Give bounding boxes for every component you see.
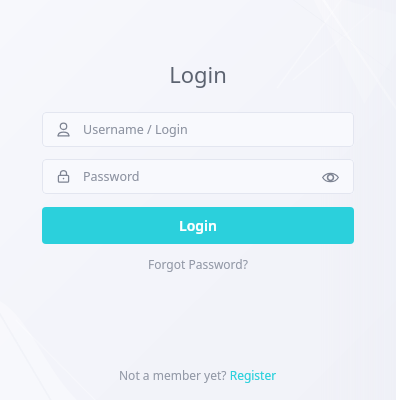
- other: Password: [56, 169, 71, 184]
- button[interactable]: Forgot Password?: [140, 253, 256, 275]
- staticText: Not a member yet? Register: [119, 367, 277, 383]
- other: Username: [56, 122, 71, 137]
- button[interactable]: Show password: [320, 167, 340, 187]
- button[interactable]: Login: [42, 207, 354, 244]
- button[interactable]: Not a member yet? Register: [111, 364, 285, 386]
- staticText: Login: [169, 59, 227, 89]
- staticText: Password: [83, 168, 320, 185]
- button[interactable]: Password: [42, 159, 354, 194]
- staticText: Forgot Password?: [148, 256, 248, 272]
- staticText: Username / Login: [83, 121, 340, 138]
- staticText: Login: [179, 216, 217, 235]
- button[interactable]: Username: [42, 112, 354, 147]
